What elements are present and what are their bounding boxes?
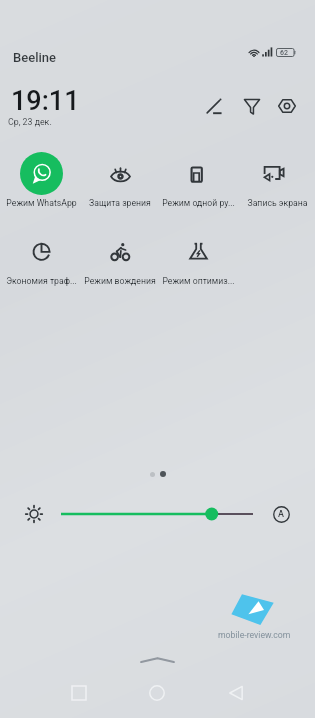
button[interactable]: Filter — [240, 94, 264, 118]
button[interactable]: Settings — [275, 94, 299, 118]
button[interactable]: Защита зрения — [80, 151, 159, 208]
staticText: Режим одной ру... — [162, 198, 235, 208]
button[interactable]: Экономия траф... — [2, 229, 80, 286]
staticText: Запись экрана — [247, 198, 308, 208]
button[interactable]: Home — [141, 677, 173, 709]
button[interactable]: Запись экрана — [238, 151, 315, 208]
staticText: 62 — [280, 49, 288, 57]
staticText: A — [278, 509, 284, 520]
staticText: Режим вождения — [84, 276, 156, 286]
staticText: Экономия траф... — [6, 276, 77, 286]
staticText: 19:11 — [11, 85, 80, 117]
button[interactable]: Edit — [202, 94, 226, 118]
button[interactable]: Режим одной ру... — [159, 151, 238, 208]
button[interactable]: Back — [220, 677, 252, 709]
staticText: Ср, 23 дек. — [8, 117, 52, 127]
staticText: mobile-review.com — [218, 630, 291, 640]
button[interactable]: Recents — [63, 677, 95, 709]
button[interactable]: Режим WhatsApp — [2, 151, 80, 208]
staticText: Режим оптимиз... — [162, 276, 235, 286]
staticText: Защита зрения — [89, 198, 151, 208]
button[interactable]: Режим оптимиз... — [159, 229, 238, 286]
button[interactable]: Режим вождения — [80, 229, 159, 286]
staticText: Beeline — [13, 50, 56, 65]
staticText: Режим WhatsApp — [6, 198, 77, 208]
button[interactable]: Auto brightness — [270, 503, 292, 525]
